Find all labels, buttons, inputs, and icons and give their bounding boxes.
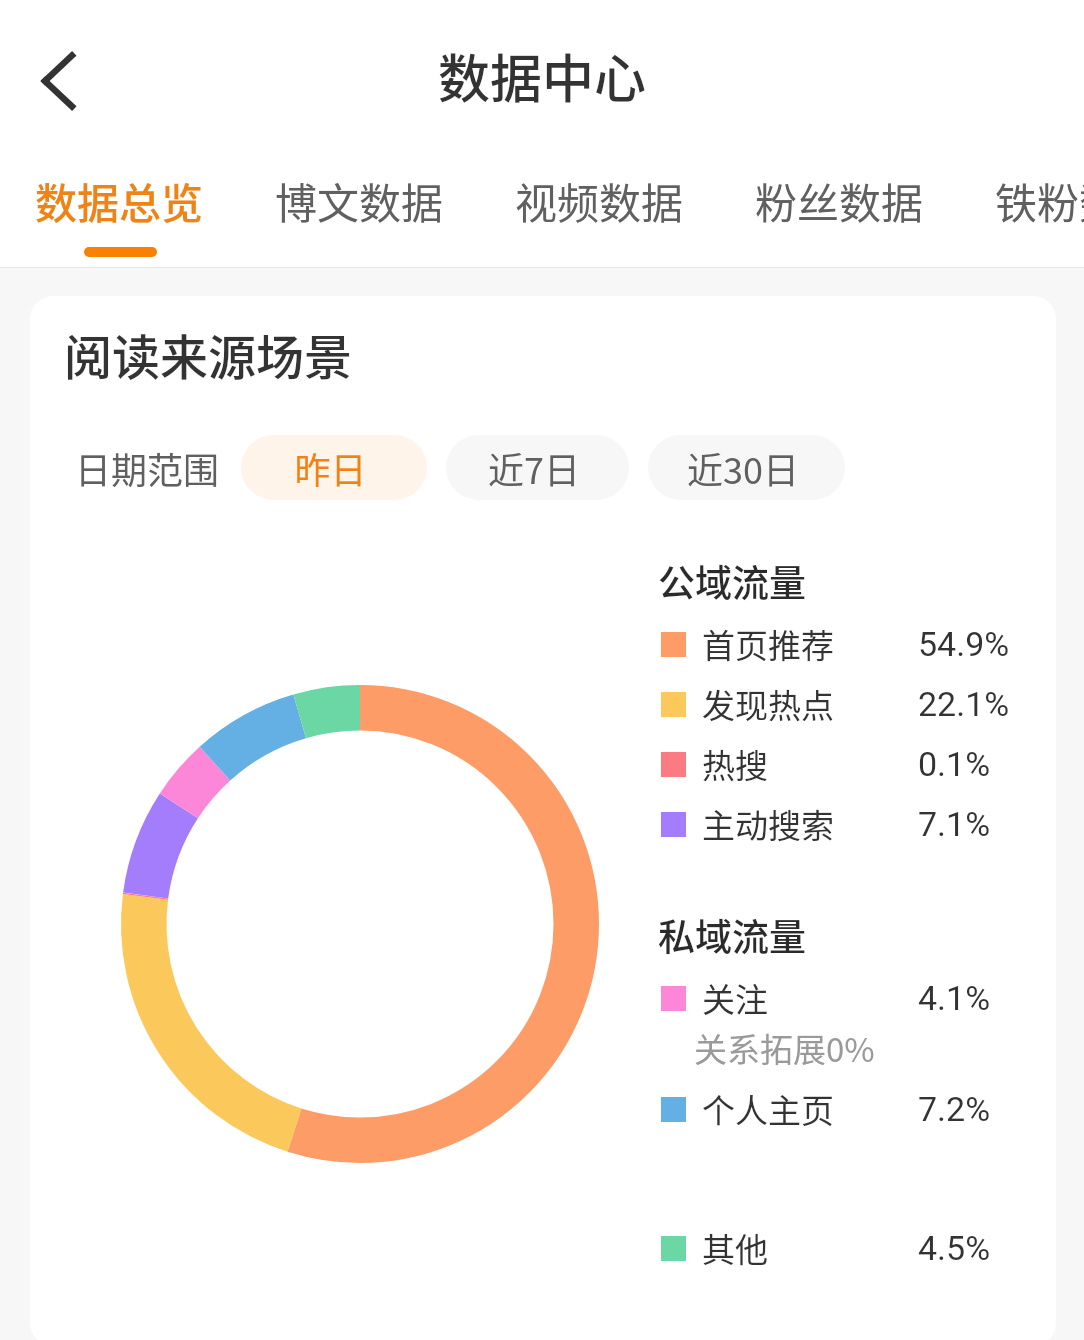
staticText: 发现热点 — [702, 680, 834, 728]
staticText: 其他 — [702, 1224, 768, 1272]
staticText: 热搜 — [702, 740, 768, 788]
button[interactable]: 热搜 — [661, 734, 1056, 794]
button[interactable]: 博文数据 — [239, 160, 479, 267]
button[interactable]: Back — [20, 43, 96, 119]
staticText: 昨日 — [294, 442, 367, 494]
staticText: 4.1% — [918, 978, 991, 1018]
staticText: 关注 — [702, 974, 768, 1022]
staticText: 近7日 — [488, 442, 580, 494]
button[interactable]: 粉丝数据 — [719, 160, 959, 267]
button[interactable]: 首页推荐 — [661, 614, 1056, 674]
button[interactable]: 其他 — [661, 1218, 1056, 1278]
button[interactable]: 视频数据 — [479, 160, 719, 267]
staticText: 0.1% — [918, 744, 991, 784]
staticText: 个人主页 — [702, 1085, 834, 1133]
staticText: 54.9% — [918, 624, 1010, 664]
staticText: 7.1% — [918, 804, 991, 844]
staticText: 22.1% — [918, 684, 1010, 724]
staticText: 博文数据 — [275, 170, 444, 231]
button[interactable]: 铁粉数据 — [959, 160, 1084, 267]
staticText: 数据中心 — [438, 38, 647, 113]
staticText: 4.5% — [918, 1228, 991, 1268]
staticText: 关系拓展0% — [694, 1024, 875, 1072]
staticText: 7.2% — [918, 1089, 991, 1129]
staticText: 阅读来源场景 — [64, 319, 353, 389]
staticText: 铁粉数据 — [995, 170, 1084, 231]
button[interactable]: 主动搜索 — [661, 794, 1056, 854]
button[interactable]: 数据总览 — [0, 160, 239, 267]
staticText: 粉丝数据 — [755, 170, 924, 231]
staticText: 私域流量 — [658, 908, 806, 960]
staticText: 主动搜索 — [702, 800, 834, 848]
staticText: 数据总览 — [35, 170, 204, 231]
staticText: 公域流量 — [658, 554, 806, 606]
staticText: 日期范围 — [75, 442, 220, 494]
staticText: 近30日 — [687, 442, 799, 494]
button[interactable]: 近30日 — [648, 435, 845, 500]
button[interactable]: 发现热点 — [661, 674, 1056, 734]
staticText: 首页推荐 — [702, 620, 834, 668]
button[interactable]: 个人主页 — [661, 1079, 1056, 1139]
button[interactable]: 关注 — [661, 968, 1056, 1028]
staticText: 视频数据 — [515, 170, 684, 231]
button[interactable]: 近7日 — [446, 435, 629, 500]
button[interactable]: 昨日 — [241, 435, 427, 500]
